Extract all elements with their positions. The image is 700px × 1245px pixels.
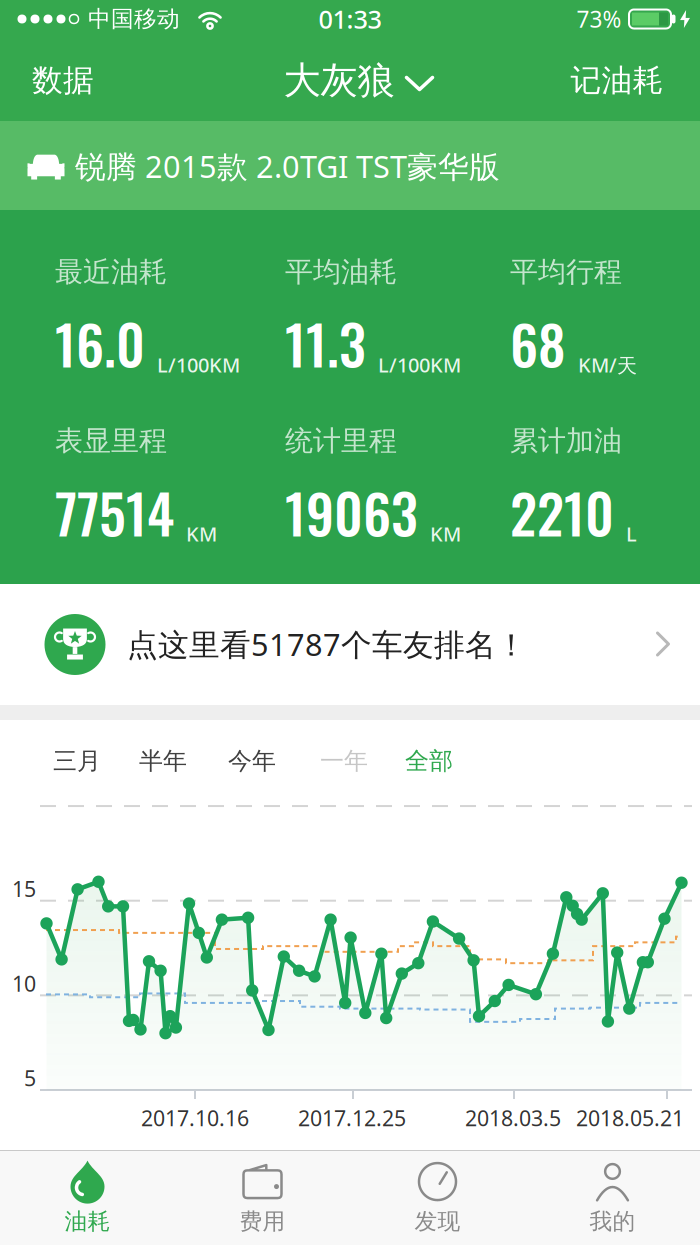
button[interactable]: 发现 <box>350 1151 525 1245</box>
staticText: 2018.05.21 <box>576 1104 684 1132</box>
staticText: 大灰狼 <box>283 58 394 103</box>
staticText: 平均油耗 <box>285 255 397 289</box>
staticText: 油耗 <box>64 1208 110 1235</box>
button[interactable]: 记油耗 <box>547 40 687 121</box>
button[interactable]: 半年 <box>128 733 198 789</box>
staticText: 77514 <box>55 472 174 552</box>
staticText: 表显里程 <box>55 424 167 458</box>
button[interactable]: 点这里看51787个车友排名！ <box>0 584 700 705</box>
staticText: KM <box>430 520 461 547</box>
staticText: 01:33 <box>318 2 381 36</box>
staticText: 10 <box>12 969 36 997</box>
staticText: 记油耗 <box>570 62 663 99</box>
staticText: 2210 <box>510 472 614 552</box>
staticText: 三月 <box>53 746 101 776</box>
button[interactable]: 费用 <box>175 1151 350 1245</box>
staticText: 16.0 <box>55 303 145 383</box>
staticText: 2018.03.5 <box>465 1104 561 1132</box>
staticText: 费用 <box>239 1208 285 1235</box>
staticText: 全部 <box>405 746 453 776</box>
staticText: KM <box>186 520 217 547</box>
staticText: 点这里看51787个车友排名！ <box>127 624 527 664</box>
staticText: KM/天 <box>578 351 637 378</box>
button[interactable]: 数据 <box>8 40 118 121</box>
button[interactable]: 全部 <box>394 733 464 789</box>
button[interactable]: 一年 <box>309 733 379 789</box>
staticText: 11.3 <box>285 303 366 383</box>
staticText: 5 <box>24 1064 36 1092</box>
staticText: 我的 <box>589 1208 635 1235</box>
staticText: L <box>626 520 637 547</box>
staticText: 2017.10.16 <box>141 1104 249 1132</box>
staticText: 锐腾 2015款 2.0TGI TST豪华版 <box>75 146 500 186</box>
button[interactable]: 锐腾 2015款 2.0TGI TST豪华版 <box>0 121 700 210</box>
staticText: 今年 <box>228 746 276 776</box>
button[interactable]: 三月 <box>42 733 112 789</box>
staticText: 最近油耗 <box>55 255 167 289</box>
button[interactable]: 油耗 <box>0 1151 175 1245</box>
staticText: 73% <box>576 4 621 34</box>
button[interactable]: 大灰狼 <box>283 40 432 121</box>
staticText: 半年 <box>139 746 187 776</box>
staticText: 中国移动 <box>88 5 180 33</box>
staticText: 累计加油 <box>510 424 622 458</box>
staticText: 68 <box>510 303 566 383</box>
staticText: 一年 <box>320 746 368 776</box>
staticText: L/100KM <box>157 351 240 378</box>
staticText: 发现 <box>414 1208 460 1235</box>
staticText: L/100KM <box>378 351 461 378</box>
staticText: 平均行程 <box>510 255 622 289</box>
staticText: 15 <box>12 874 36 903</box>
staticText: 19063 <box>285 472 418 552</box>
staticText: 数据 <box>32 62 94 99</box>
button[interactable]: 今年 <box>217 733 287 789</box>
staticText: 2017.12.25 <box>298 1104 406 1132</box>
staticText: 统计里程 <box>285 424 397 458</box>
button[interactable]: 我的 <box>525 1151 700 1245</box>
